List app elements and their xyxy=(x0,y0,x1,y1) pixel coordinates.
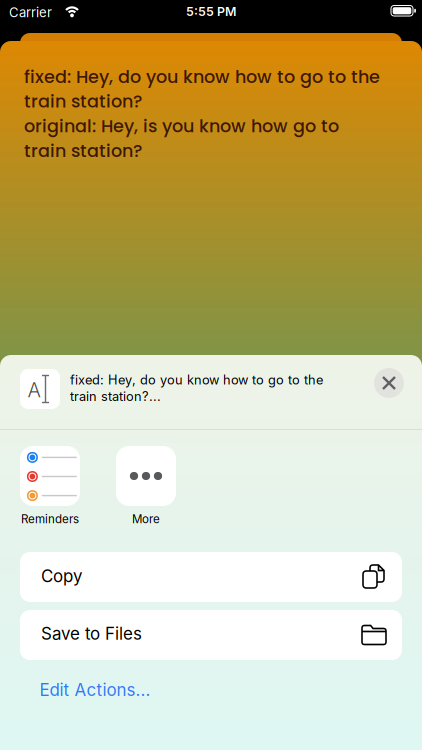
button[interactable]: Edit Actions... xyxy=(39,679,150,700)
button[interactable]: Close xyxy=(374,368,404,398)
staticText: Reminders xyxy=(21,512,79,526)
button[interactable]: Copy xyxy=(20,552,402,602)
button[interactable]: Reminders xyxy=(18,446,82,526)
staticText: 5:55 PM xyxy=(186,4,236,19)
button[interactable]: Save to Files xyxy=(20,610,402,660)
staticText: fixed: Hey, do you know how to go to the… xyxy=(70,372,323,404)
staticText: Save to Files xyxy=(41,623,142,644)
staticText: Carrier xyxy=(9,4,52,20)
staticText: A xyxy=(27,378,40,402)
button[interactable]: More xyxy=(114,446,178,526)
staticText: Copy xyxy=(41,566,83,586)
staticText: Edit Actions... xyxy=(39,679,150,700)
staticText: More xyxy=(132,512,160,526)
staticText: fixed: Hey, do you know how to go to the… xyxy=(24,64,380,163)
